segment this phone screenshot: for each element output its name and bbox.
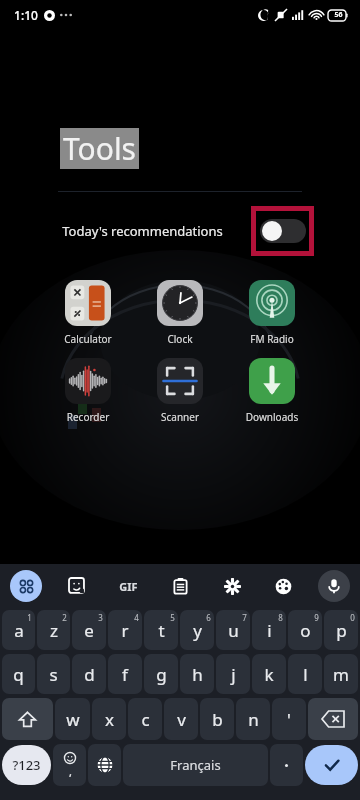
staticText: s bbox=[49, 663, 58, 686]
staticText: k bbox=[264, 663, 274, 686]
staticText: m bbox=[333, 663, 349, 686]
button[interactable]: Today's recommendations toggle bbox=[256, 211, 309, 251]
button[interactable]: Recorder bbox=[52, 358, 124, 424]
button[interactable]: u bbox=[216, 610, 250, 650]
button[interactable]: Clock bbox=[144, 280, 216, 346]
button[interactable]: c bbox=[128, 698, 162, 740]
button[interactable]: i bbox=[252, 610, 286, 650]
button[interactable]: Voice input bbox=[318, 570, 350, 602]
button[interactable]: p bbox=[324, 610, 358, 650]
button[interactable]: z bbox=[37, 610, 70, 650]
button[interactable]: Change language bbox=[88, 744, 121, 786]
staticText: c bbox=[141, 708, 150, 731]
button[interactable]: q bbox=[2, 654, 35, 694]
staticText: Recorder bbox=[52, 410, 124, 424]
staticText: Calculator bbox=[52, 332, 124, 346]
button[interactable]: d bbox=[72, 654, 106, 694]
button[interactable]: l bbox=[288, 654, 322, 694]
staticText: 7 bbox=[242, 612, 247, 623]
staticText: x bbox=[105, 708, 114, 731]
button[interactable]: k bbox=[252, 654, 286, 694]
staticText: Français bbox=[170, 756, 221, 774]
button[interactable]: e bbox=[72, 610, 106, 650]
button[interactable]: Emoji and comma bbox=[53, 744, 86, 786]
staticText: 3 bbox=[98, 612, 103, 623]
staticText: b bbox=[212, 708, 223, 731]
staticText: q bbox=[13, 663, 24, 686]
staticText: FM Radio bbox=[236, 332, 308, 346]
staticText: Tools bbox=[63, 128, 136, 169]
button[interactable]: Tools bbox=[63, 128, 136, 169]
staticText: i bbox=[267, 619, 272, 642]
staticText: h bbox=[192, 663, 203, 686]
staticText: 1:10 bbox=[14, 7, 38, 23]
button[interactable]: a bbox=[2, 610, 35, 650]
staticText: p bbox=[336, 619, 347, 642]
button[interactable]: j bbox=[216, 654, 250, 694]
staticText: t bbox=[158, 619, 165, 642]
staticText: y bbox=[193, 619, 202, 642]
button[interactable]: g bbox=[144, 654, 178, 694]
button[interactable]: Apps bbox=[10, 570, 42, 602]
button[interactable]: r bbox=[108, 610, 142, 650]
staticText: f bbox=[122, 663, 128, 686]
button[interactable]: y bbox=[180, 610, 214, 650]
staticText: ' bbox=[287, 708, 291, 731]
staticText: 1 bbox=[27, 612, 32, 623]
button[interactable]: s bbox=[37, 654, 70, 694]
staticText: r bbox=[121, 619, 129, 642]
staticText: 56 bbox=[334, 10, 343, 20]
staticText: 9 bbox=[314, 612, 319, 623]
staticText: a bbox=[14, 619, 24, 642]
staticText: GIF bbox=[119, 579, 138, 594]
button[interactable]: Calculator bbox=[52, 280, 124, 346]
button[interactable]: f bbox=[108, 654, 142, 694]
staticText: 8 bbox=[278, 612, 283, 623]
button[interactable]: Period bbox=[270, 744, 303, 786]
button[interactable]: m bbox=[324, 654, 358, 694]
button[interactable]: GIF bbox=[111, 569, 145, 603]
staticText: j bbox=[231, 663, 236, 686]
staticText: g bbox=[156, 663, 167, 686]
staticText: l bbox=[303, 663, 308, 686]
button[interactable]: FM Radio bbox=[236, 280, 308, 346]
button[interactable]: Downloads bbox=[236, 358, 308, 424]
staticText: z bbox=[50, 619, 58, 642]
button[interactable]: h bbox=[180, 654, 214, 694]
staticText: u bbox=[228, 619, 239, 642]
button[interactable]: Sticker bbox=[60, 569, 94, 603]
button[interactable]: Enter bbox=[305, 745, 358, 785]
staticText: , bbox=[69, 764, 72, 779]
button[interactable]: Shift bbox=[2, 698, 53, 740]
staticText: 6 bbox=[206, 612, 211, 623]
button[interactable]: Français bbox=[123, 744, 268, 786]
staticText: 2 bbox=[62, 612, 67, 623]
button[interactable]: v bbox=[164, 698, 198, 740]
staticText: w bbox=[66, 708, 80, 731]
staticText: 4 bbox=[134, 612, 139, 623]
button[interactable]: Themes bbox=[266, 569, 300, 603]
button[interactable]: n bbox=[236, 698, 270, 740]
button[interactable]: ' bbox=[272, 698, 306, 740]
button[interactable]: Backspace bbox=[308, 698, 358, 740]
staticText: Scanner bbox=[144, 410, 216, 424]
staticText: d bbox=[84, 663, 95, 686]
button[interactable]: b bbox=[200, 698, 234, 740]
staticText: e bbox=[84, 619, 94, 642]
button[interactable]: Scanner bbox=[144, 358, 216, 424]
button[interactable]: Clipboard bbox=[163, 569, 197, 603]
staticText: ?123 bbox=[12, 756, 41, 774]
staticText: Today's recommendations bbox=[62, 222, 223, 240]
staticText: 0 bbox=[350, 612, 355, 623]
staticText: Downloads bbox=[236, 410, 308, 424]
button[interactable]: t bbox=[144, 610, 178, 650]
button[interactable]: o bbox=[288, 610, 322, 650]
staticText: 5 bbox=[170, 612, 175, 623]
button[interactable]: w bbox=[55, 698, 90, 740]
staticText: Clock bbox=[144, 332, 216, 346]
button[interactable]: x bbox=[92, 698, 126, 740]
staticText: v bbox=[177, 708, 186, 731]
staticText: n bbox=[248, 708, 259, 731]
button[interactable]: ?123 bbox=[2, 745, 51, 785]
button[interactable]: Settings bbox=[215, 569, 249, 603]
